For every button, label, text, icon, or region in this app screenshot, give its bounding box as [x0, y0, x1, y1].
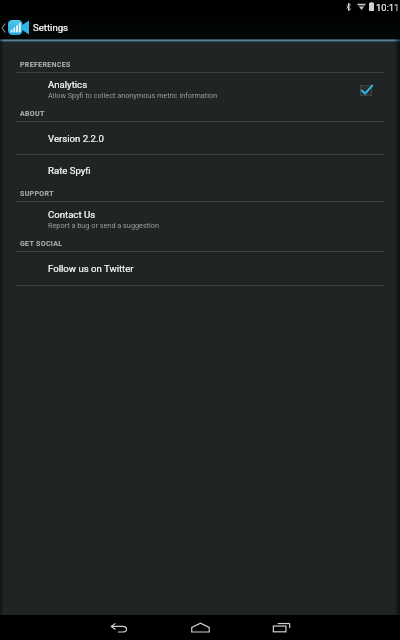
staticText: 10:11	[376, 2, 400, 13]
staticText: Settings	[33, 22, 69, 33]
staticText: PREFERENCES	[20, 61, 71, 69]
button[interactable]: Rate Spyfi	[0, 155, 400, 186]
button[interactable]: Back	[0, 615, 134, 640]
staticText: Version 2.2.0	[48, 133, 104, 144]
staticText: ABOUT	[20, 110, 45, 118]
button[interactable]: Follow us on Twitter	[0, 252, 400, 285]
button[interactable]: Recent apps	[267, 615, 400, 640]
button[interactable]: Analytics checkbox	[355, 79, 377, 101]
staticText: Report a bug or send a suggestion	[48, 221, 160, 230]
button[interactable]: Home	[134, 615, 267, 640]
staticText: SUPPORT	[20, 190, 54, 198]
button[interactable]: Contact Us	[0, 202, 400, 236]
button[interactable]: Version 2.2.0	[0, 122, 400, 154]
staticText: Allow Spyfi to collect anonymous metric …	[48, 91, 218, 100]
staticText: Follow us on Twitter	[48, 263, 134, 274]
staticText: GET SOCIAL	[20, 240, 63, 248]
staticText: Rate Spyfi	[48, 165, 91, 176]
button[interactable]: Analytics	[0, 73, 400, 106]
staticText: Analytics	[48, 79, 88, 90]
staticText: Contact Us	[48, 209, 96, 220]
